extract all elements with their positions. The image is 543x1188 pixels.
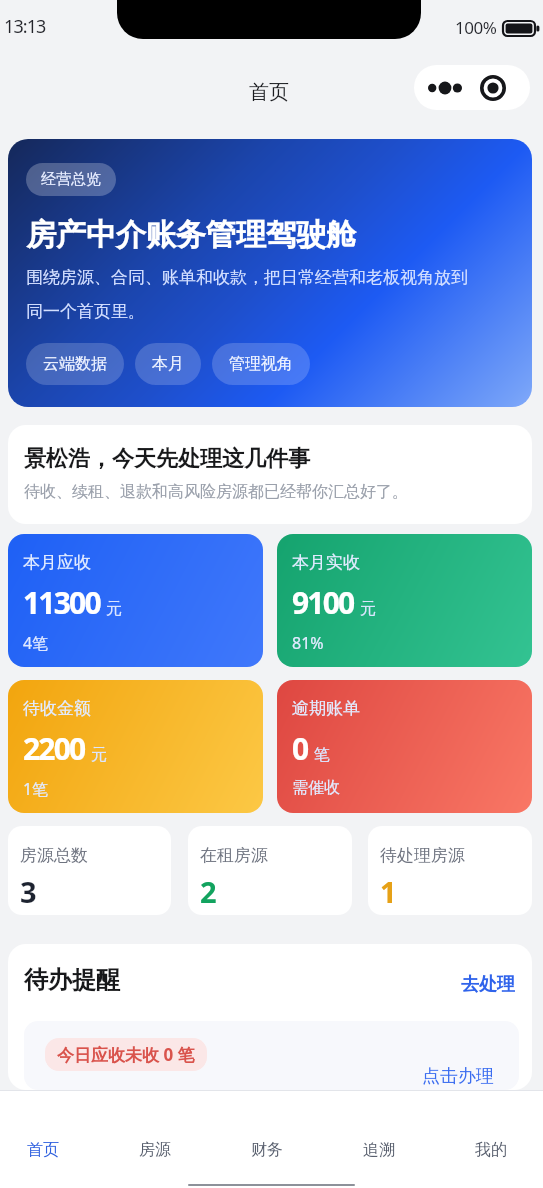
button[interactable]: More options: [414, 65, 530, 110]
staticText: 管理视角: [229, 354, 293, 374]
button[interactable]: 首页: [0, 1091, 99, 1167]
staticText: 0: [292, 728, 308, 769]
button[interactable]: 财务: [211, 1091, 323, 1167]
button[interactable]: 景松浩，今天先处理这几件事: [8, 425, 532, 524]
button[interactable]: 在租房源: [188, 826, 352, 915]
staticText: 笔: [314, 745, 330, 765]
button[interactable]: 本月: [135, 343, 201, 385]
staticText: 81%: [292, 632, 324, 654]
staticText: 在租房源: [200, 845, 268, 866]
button[interactable]: 去处理: [457, 964, 519, 995]
staticText: 1笔: [23, 778, 49, 800]
button[interactable]: 待处理房源: [368, 826, 532, 915]
staticText: 13:13: [4, 14, 46, 39]
staticText: 元: [360, 599, 376, 619]
staticText: 景松浩，今天先处理这几件事: [24, 445, 310, 473]
staticText: 去处理: [461, 973, 515, 996]
button[interactable]: 本月实收: [277, 534, 532, 667]
staticText: 待处理房源: [380, 845, 465, 866]
button[interactable]: 云端数据: [26, 343, 124, 385]
staticText: 我的: [475, 1140, 507, 1160]
staticText: 本月应收: [23, 552, 91, 573]
staticText: 本月: [152, 354, 184, 374]
staticText: 元: [106, 599, 122, 619]
staticText: 待收金额: [23, 698, 91, 719]
staticText: 3: [20, 872, 37, 911]
staticText: 9100: [292, 582, 354, 623]
button[interactable]: 管理视角: [212, 343, 310, 385]
staticText: 4笔: [23, 632, 49, 654]
button[interactable]: 今日应收未收 0 笔: [24, 1021, 519, 1090]
staticText: 财务: [251, 1140, 283, 1160]
staticText: 2200: [23, 728, 85, 769]
staticText: 元: [91, 745, 107, 765]
staticText: 1: [380, 872, 397, 911]
staticText: 点击办理: [422, 1065, 494, 1088]
button[interactable]: 逾期账单: [277, 680, 532, 813]
staticText: 逾期账单: [292, 698, 360, 719]
staticText: 待收、续租、退款和高风险房源都已经帮你汇总好了。: [24, 482, 408, 502]
other: Close mini program: [480, 75, 506, 101]
button[interactable]: 房源: [99, 1091, 211, 1167]
staticText: 经营总览: [41, 170, 101, 189]
staticText: 首页: [27, 1140, 59, 1160]
staticText: 11300: [23, 582, 100, 623]
staticText: 2: [200, 872, 217, 911]
staticText: 云端数据: [43, 354, 107, 374]
staticText: 今日应收未收 0 笔: [57, 1043, 195, 1066]
staticText: 追溯: [363, 1140, 395, 1160]
button[interactable]: 本月应收: [8, 534, 263, 667]
button[interactable]: 待收金额: [8, 680, 263, 813]
staticText: 需催收: [292, 778, 340, 798]
staticText: 房源总数: [20, 845, 88, 866]
staticText: 房源: [139, 1140, 171, 1160]
button[interactable]: 经营总览: [8, 139, 532, 407]
other: More options: [428, 81, 462, 95]
staticText: 首页: [249, 80, 289, 105]
button[interactable]: 点击办理: [418, 1061, 498, 1090]
button[interactable]: 房源总数: [8, 826, 171, 915]
staticText: 待办提醒: [24, 965, 120, 995]
staticText: 围绕房源、合同、账单和收款，把日常经营和老板视角放到 同一个首页里。: [26, 267, 516, 322]
staticText: 本月实收: [292, 552, 360, 573]
staticText: 房产中介账务管理驾驶舱: [26, 216, 356, 254]
staticText: 100%: [455, 16, 497, 39]
button[interactable]: 我的: [435, 1091, 543, 1167]
button[interactable]: 追溯: [323, 1091, 435, 1167]
